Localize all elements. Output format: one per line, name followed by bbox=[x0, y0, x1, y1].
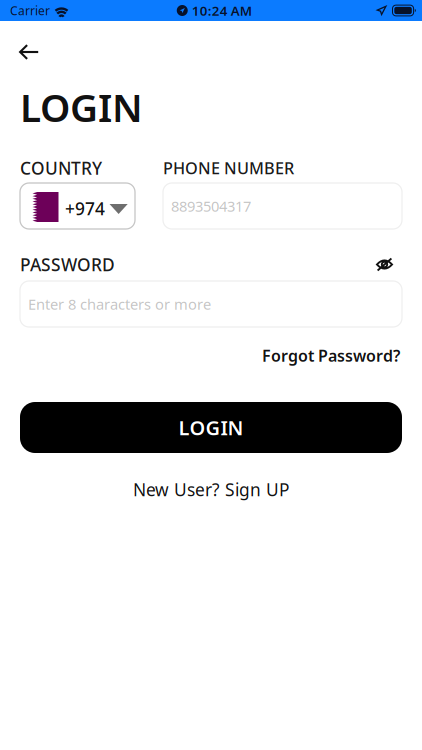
staticText: New User? Sign UP bbox=[133, 478, 289, 501]
button[interactable]: New User? Sign UP bbox=[133, 478, 289, 501]
button[interactable]: Forgot Password? bbox=[262, 345, 400, 366]
button[interactable]: 8893504317 bbox=[163, 183, 402, 229]
staticText: +974 bbox=[65, 197, 105, 220]
staticText: LOGIN bbox=[178, 414, 243, 441]
staticText: Carrier bbox=[10, 2, 50, 18]
staticText: LOGIN bbox=[20, 81, 143, 133]
staticText: COUNTRY bbox=[20, 156, 102, 180]
staticText: Forgot Password? bbox=[262, 345, 400, 366]
staticText: Enter 8 characters or more bbox=[28, 294, 211, 314]
staticText: PHONE NUMBER bbox=[163, 157, 294, 179]
button[interactable]: Show password bbox=[376, 257, 393, 272]
button[interactable]: LOGIN bbox=[20, 402, 402, 453]
button[interactable]: Enter 8 characters or more bbox=[20, 281, 402, 327]
staticText: 10:24 AM bbox=[192, 2, 252, 19]
button[interactable]: +974 bbox=[20, 183, 135, 229]
button[interactable]: Back bbox=[0, 31, 53, 69]
staticText: PASSWORD bbox=[20, 253, 115, 276]
staticText: 8893504317 bbox=[171, 196, 251, 216]
